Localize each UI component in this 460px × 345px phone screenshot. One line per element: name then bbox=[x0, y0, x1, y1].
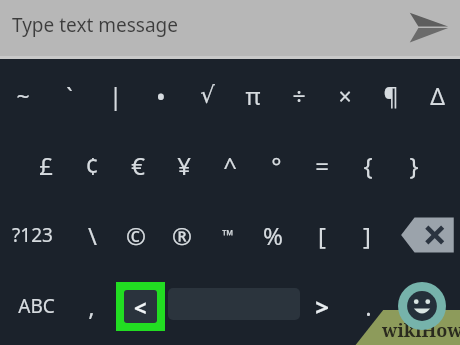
staticText: © bbox=[126, 219, 146, 252]
staticText: \ bbox=[88, 219, 97, 252]
button[interactable]: , bbox=[68, 275, 114, 337]
staticText: wikiHow bbox=[382, 318, 460, 343]
button[interactable]: % bbox=[250, 204, 296, 266]
button[interactable]: ™ bbox=[205, 204, 251, 266]
staticText: ¥ bbox=[177, 149, 191, 182]
button[interactable]: © bbox=[113, 204, 159, 266]
button[interactable]: Type text message bbox=[0, 0, 460, 56]
staticText: ABC bbox=[18, 293, 55, 319]
button[interactable]: ] bbox=[344, 204, 390, 266]
staticText: . bbox=[365, 290, 372, 323]
staticText: { bbox=[363, 149, 373, 182]
staticText: • bbox=[156, 78, 166, 113]
button[interactable]: ?123 bbox=[0, 204, 64, 266]
button[interactable]: { bbox=[345, 134, 391, 196]
button[interactable]: £ bbox=[23, 134, 69, 196]
staticText: > bbox=[315, 290, 329, 323]
staticText: ÷ bbox=[292, 80, 306, 111]
button[interactable]: . bbox=[345, 275, 391, 337]
button[interactable]: ¢ bbox=[69, 134, 115, 196]
staticText: π bbox=[245, 80, 261, 111]
button[interactable]: ° bbox=[253, 134, 299, 196]
button[interactable]: € bbox=[115, 134, 161, 196]
button[interactable]: [ bbox=[299, 204, 345, 266]
button[interactable]: ~ bbox=[0, 64, 46, 126]
button[interactable]: ¶ bbox=[368, 64, 414, 126]
button[interactable]: ÷ bbox=[276, 64, 322, 126]
button[interactable]: | bbox=[92, 64, 138, 126]
button[interactable]: ^ bbox=[207, 134, 253, 196]
staticText: ~ bbox=[16, 80, 30, 111]
staticText: ¶ bbox=[383, 80, 399, 111]
staticText: [ bbox=[318, 219, 326, 252]
button[interactable]: ` bbox=[46, 64, 92, 126]
button[interactable]: Less than bbox=[116, 282, 165, 331]
staticText: < bbox=[134, 292, 147, 322]
button[interactable]: Δ bbox=[414, 64, 460, 126]
staticText: £ bbox=[39, 149, 53, 182]
staticText: ® bbox=[172, 219, 192, 252]
staticText: ™ bbox=[222, 225, 234, 245]
staticText: = bbox=[315, 149, 329, 182]
button[interactable]: • bbox=[138, 64, 184, 126]
staticText: % bbox=[263, 219, 283, 252]
staticText: ] bbox=[363, 219, 371, 252]
button[interactable]: > bbox=[299, 275, 345, 337]
button[interactable]: ABC bbox=[4, 275, 68, 337]
staticText: √ bbox=[200, 82, 215, 109]
staticText: ^ bbox=[223, 149, 237, 182]
staticText: ¢ bbox=[85, 149, 99, 182]
button[interactable]: √ bbox=[184, 64, 230, 126]
button[interactable]: \ bbox=[69, 204, 115, 266]
staticText: ?123 bbox=[12, 222, 53, 248]
staticText: ° bbox=[271, 149, 282, 182]
button[interactable]: Backspace bbox=[400, 213, 456, 257]
staticText: } bbox=[409, 149, 419, 182]
button[interactable]: ® bbox=[159, 204, 205, 266]
button[interactable]: Emoji bbox=[398, 282, 446, 330]
staticText: , bbox=[88, 290, 95, 323]
staticText: × bbox=[338, 80, 352, 111]
staticText: | bbox=[109, 80, 122, 111]
staticText: € bbox=[131, 149, 145, 182]
button[interactable]: π bbox=[230, 64, 276, 126]
button[interactable]: } bbox=[391, 134, 437, 196]
staticText: ` bbox=[66, 80, 73, 111]
button[interactable]: × bbox=[322, 64, 368, 126]
button[interactable]: Send bbox=[404, 4, 452, 52]
button[interactable]: ¥ bbox=[161, 134, 207, 196]
staticText: Δ bbox=[430, 80, 445, 111]
button[interactable]: = bbox=[299, 134, 345, 196]
staticText: Type text message bbox=[12, 12, 179, 38]
